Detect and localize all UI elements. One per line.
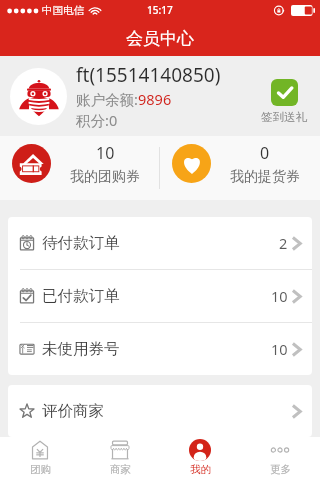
button[interactable]: 未使用券号 [8,323,312,375]
button[interactable]: 签到送礼 [261,79,307,124]
staticText: 我的提货券 [230,168,300,186]
staticText: 10 [271,286,288,306]
button[interactable]: 待付款订单 [8,217,312,269]
staticText: 积分:0 [76,110,118,130]
staticText: 更多 [270,463,291,476]
staticText: 团购 [30,463,51,476]
staticText: 待付款订单 [42,233,120,253]
staticText: 未使用券号 [42,339,120,359]
staticText: 2 [279,233,288,253]
staticText: ft(15514140850) [76,62,221,88]
staticText: 评价商家 [42,401,104,421]
button[interactable]: 0 [160,136,320,180]
staticText: 中国电信 [42,4,84,17]
staticText: 10 [271,339,288,359]
staticText: 已付款订单 [42,286,120,306]
staticText: 商家 [110,463,131,476]
button[interactable]: 评价商家 [8,385,312,437]
button[interactable]: 我的 [160,437,240,476]
staticText: 我的团购券 [70,168,140,186]
staticText: 账户余额: [76,89,138,109]
button[interactable]: 商家 [80,437,160,476]
staticText: 我的 [190,463,211,476]
staticText: 10 [96,142,115,164]
staticText: 9896 [138,89,172,109]
button[interactable]: 更多 [240,437,320,476]
staticText: 15:17 [147,3,173,17]
staticText: 会员中心 [126,28,194,49]
button[interactable]: 10 [0,136,159,180]
button[interactable]: 团购 [0,437,80,476]
button[interactable]: 已付款订单 [8,270,312,322]
staticText: 签到送礼 [261,110,307,124]
staticText: 0 [260,142,270,164]
button[interactable]: ft(15514140850) [0,56,320,136]
